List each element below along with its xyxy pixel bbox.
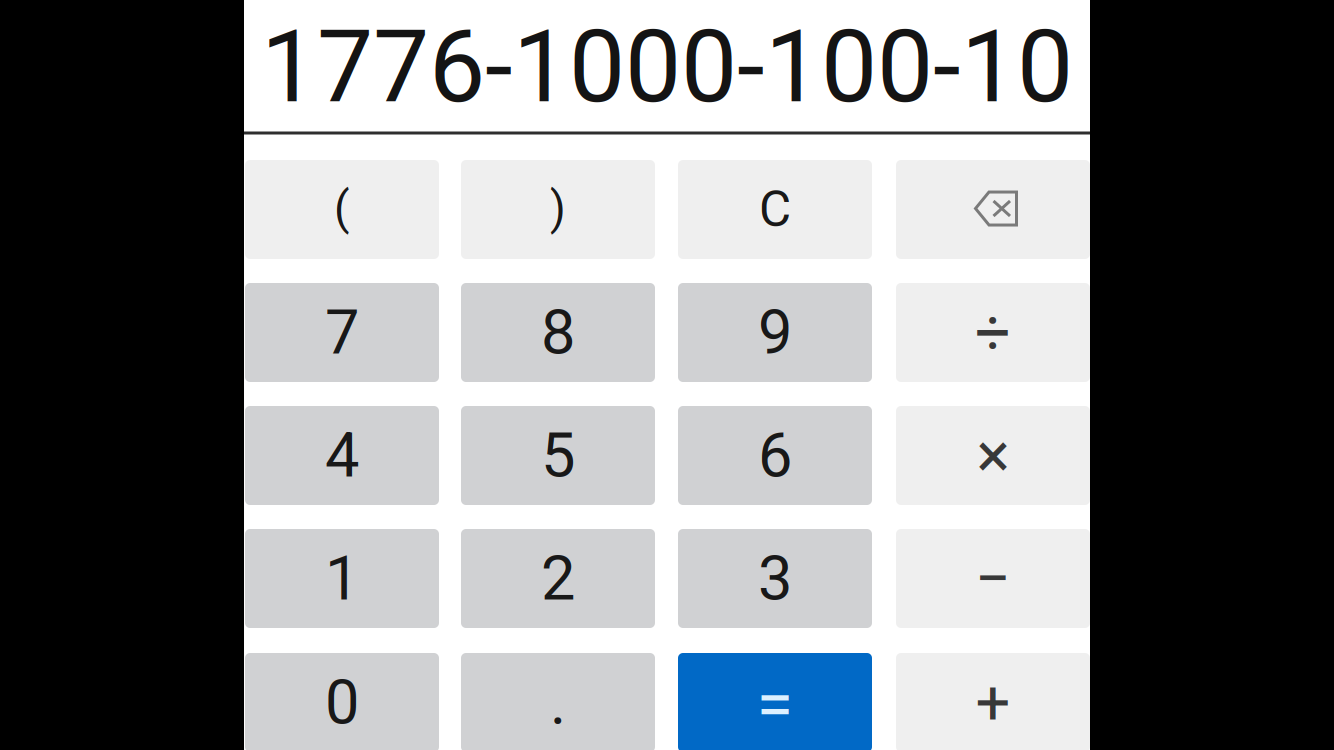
button[interactable]: C [678, 160, 872, 259]
button[interactable]: 4 [245, 406, 439, 505]
staticText: − [975, 542, 1011, 615]
staticText: C [759, 181, 791, 238]
button[interactable]: 8 [461, 283, 655, 382]
button[interactable]: 0 [245, 653, 439, 750]
staticText: ( [334, 182, 350, 235]
staticText: 1776-1000-100-10 [261, 8, 1073, 126]
staticText: × [976, 419, 1009, 492]
staticText: 7 [325, 297, 359, 368]
staticText: 9 [758, 297, 792, 368]
staticText: 8 [541, 297, 575, 368]
staticText: 6 [758, 420, 792, 491]
button[interactable]: − [896, 529, 1090, 628]
button[interactable]: × [896, 406, 1090, 505]
button[interactable]: ) [461, 160, 655, 259]
button[interactable]: 7 [245, 283, 439, 382]
staticText: + [975, 667, 1010, 738]
staticText: = [756, 665, 793, 743]
button[interactable]: ÷ [896, 283, 1090, 382]
button[interactable]: 1 [245, 529, 439, 628]
button[interactable]: = [678, 653, 872, 750]
button[interactable]: Backspace [896, 160, 1090, 259]
staticText: 3 [758, 543, 792, 614]
staticText: 2 [541, 543, 575, 614]
button[interactable]: + [896, 653, 1090, 750]
staticText: ÷ [975, 296, 1011, 369]
button[interactable]: 6 [678, 406, 872, 505]
button[interactable]: 2 [461, 529, 655, 628]
staticText: 5 [541, 420, 575, 491]
button[interactable]: . [461, 653, 655, 750]
button[interactable]: 3 [678, 529, 872, 628]
button[interactable]: 5 [461, 406, 655, 505]
staticText: 4 [325, 420, 359, 491]
staticText: 1 [325, 543, 359, 614]
button[interactable]: 9 [678, 283, 872, 382]
staticText: ) [550, 182, 566, 235]
button[interactable]: ( [245, 160, 439, 259]
staticText: . [550, 667, 566, 738]
staticText: 0 [325, 667, 359, 738]
